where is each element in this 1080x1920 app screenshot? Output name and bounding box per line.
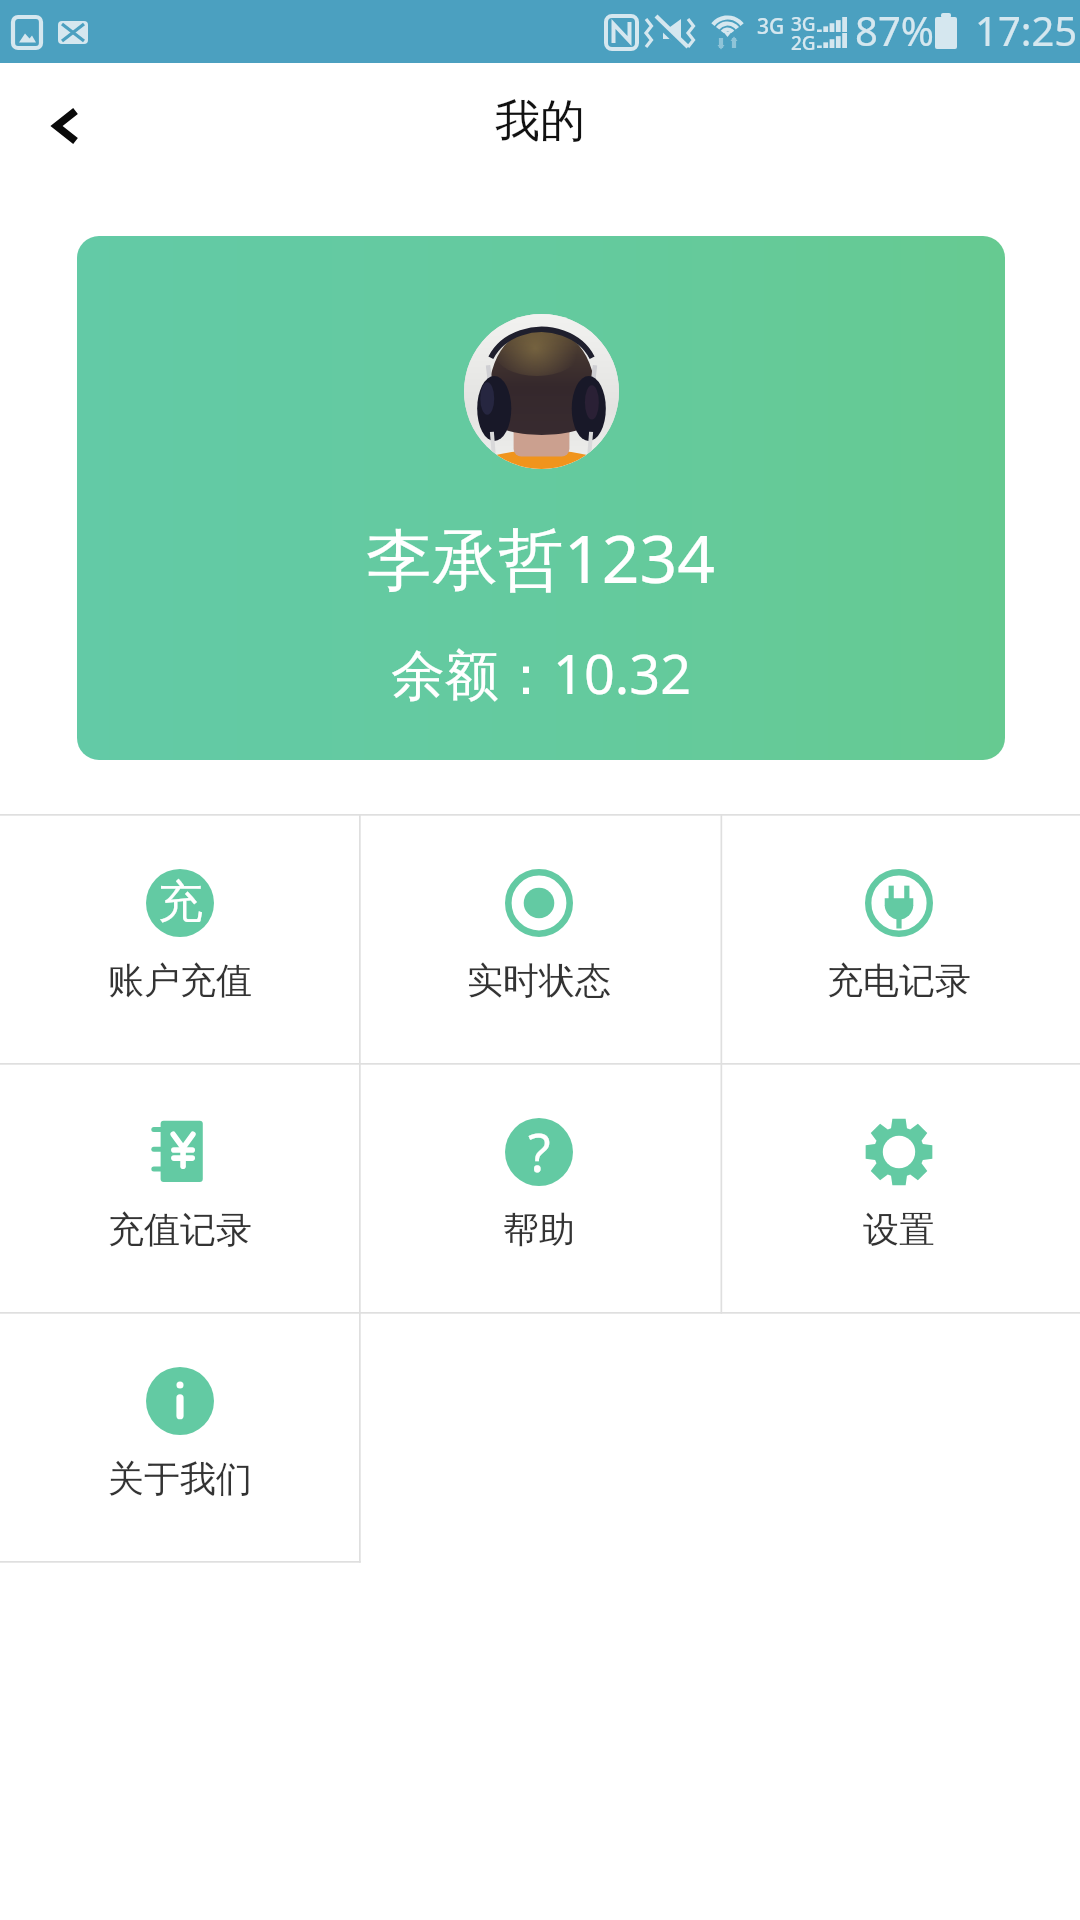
button[interactable]: 实时状态 xyxy=(359,814,718,1063)
staticText: 李承哲1234 xyxy=(366,512,716,602)
button[interactable]: Back xyxy=(16,76,116,176)
button[interactable]: 充电记录 xyxy=(719,814,1078,1063)
staticText: 帮助 xyxy=(503,1207,575,1252)
staticText: 余额：10.32 xyxy=(391,636,692,710)
staticText: 2G xyxy=(791,30,816,56)
staticText: 87% xyxy=(855,3,934,57)
staticText: 充值记录 xyxy=(108,1207,252,1252)
staticText: 我的 xyxy=(495,93,585,150)
staticText: 3G xyxy=(791,11,816,37)
staticText: 关于我们 xyxy=(108,1456,252,1501)
button[interactable]: 设置 xyxy=(719,1063,1078,1312)
staticText: 充 xyxy=(158,874,203,931)
staticText: 设置 xyxy=(863,1207,935,1252)
button[interactable]: 充值记录 xyxy=(0,1063,359,1312)
staticText: 3G xyxy=(757,12,785,41)
staticText: ? xyxy=(528,1118,551,1184)
button[interactable]: ? xyxy=(359,1063,718,1312)
staticText: 实时状态 xyxy=(467,958,611,1003)
button[interactable]: 充 xyxy=(0,814,359,1063)
button[interactable]: 李承哲1234 xyxy=(77,236,1005,760)
staticText: 账户充值 xyxy=(108,958,252,1003)
staticText: 17:25 xyxy=(975,3,1078,57)
button[interactable]: 关于我们 xyxy=(0,1312,359,1561)
staticText: 充电记录 xyxy=(827,958,971,1003)
